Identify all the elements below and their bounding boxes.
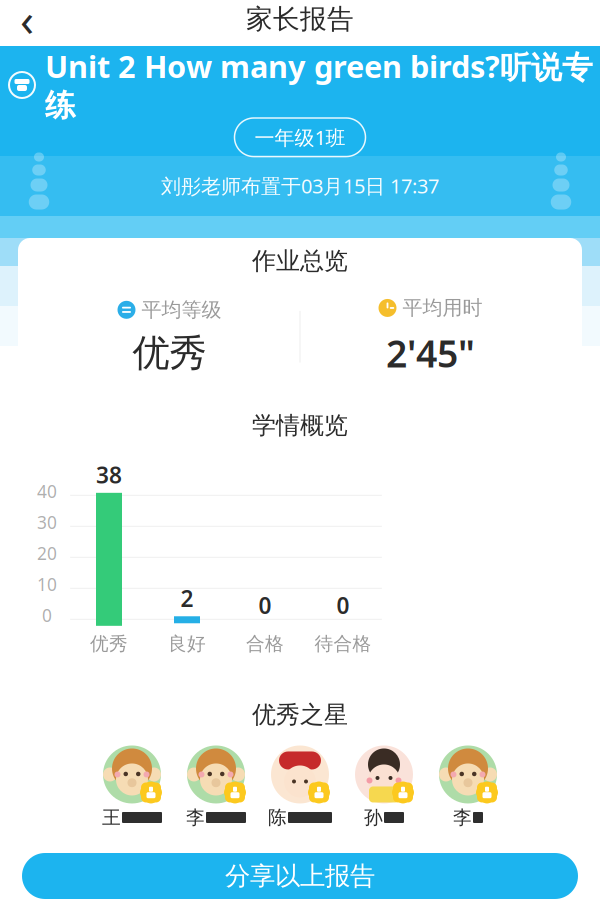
staticText: 王	[102, 806, 121, 829]
staticText: 0	[336, 590, 349, 620]
staticText: 2'45"	[386, 328, 475, 378]
staticText: 孙	[364, 806, 383, 829]
staticText: 李	[453, 806, 472, 829]
staticText: 作业总览	[252, 246, 348, 276]
button[interactable]: 分享以上报告	[22, 853, 578, 899]
staticText: 良好	[168, 632, 206, 655]
staticText: 学情概览	[252, 411, 348, 440]
staticText: 2	[180, 583, 193, 613]
staticText: 优秀	[90, 632, 128, 655]
staticText: 分享以上报告	[225, 860, 375, 891]
staticText: 20	[37, 542, 57, 565]
staticText: 30	[37, 511, 57, 534]
staticText: 10	[37, 573, 57, 596]
staticText: 刘彤老师布置于03月15日 17:37	[161, 173, 439, 199]
staticText: 优秀之星	[252, 700, 348, 729]
staticText: 合格	[246, 632, 284, 655]
staticText: 0	[42, 604, 52, 627]
staticText: 40	[37, 480, 57, 503]
staticText: Unit 2 How many green birds?听说专练	[45, 46, 593, 124]
staticText: 优秀	[132, 330, 206, 376]
staticText: 家长报告	[246, 3, 354, 35]
staticText: ‹	[20, 0, 34, 49]
staticText: 陈	[268, 806, 287, 829]
staticText: 李	[186, 806, 205, 829]
staticText: 平均用时	[402, 296, 482, 320]
button[interactable]: 返回	[0, 0, 54, 46]
staticText: 0	[258, 590, 271, 620]
staticText: 平均等级	[141, 297, 221, 322]
staticText: 38	[96, 460, 122, 490]
staticText: 待合格	[314, 632, 371, 655]
staticText: 一年级1班	[254, 124, 345, 151]
